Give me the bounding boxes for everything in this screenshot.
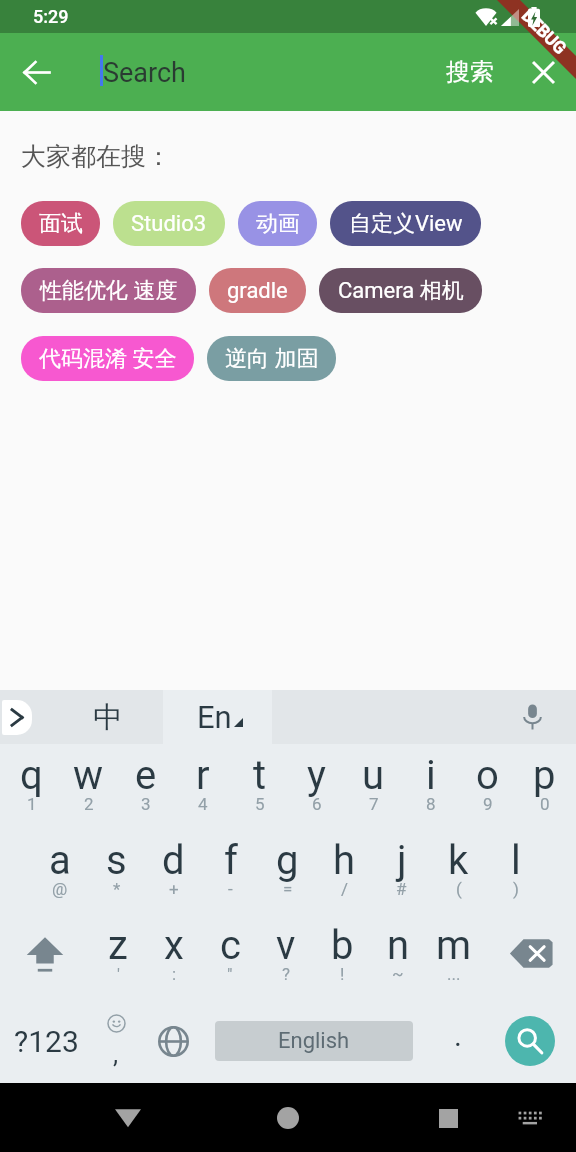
staticText: ... xyxy=(447,964,461,984)
staticText: Studio3 xyxy=(131,211,207,237)
button[interactable]: g xyxy=(259,829,316,914)
staticText: 5:29 xyxy=(33,6,69,27)
staticText: = xyxy=(283,879,293,899)
staticText: 2 xyxy=(84,794,94,814)
staticText: + xyxy=(169,879,179,899)
staticText: e xyxy=(135,752,157,799)
button[interactable]: 逆向 加固 xyxy=(207,336,336,381)
button[interactable]: Recents xyxy=(420,1090,476,1146)
button[interactable]: Camera 相机 xyxy=(319,268,482,313)
button[interactable]: o xyxy=(459,744,516,829)
staticText: 搜索 xyxy=(446,57,494,87)
button[interactable]: English xyxy=(215,1021,413,1061)
staticText: # xyxy=(396,879,407,899)
button[interactable]: Home xyxy=(260,1090,316,1146)
button[interactable]: n xyxy=(370,914,426,999)
staticText: . xyxy=(454,1018,462,1053)
staticText: 代码混淆 安全 xyxy=(39,345,177,373)
staticText: 0 xyxy=(540,794,550,814)
button[interactable]: 面试 xyxy=(21,201,100,246)
button[interactable]: x xyxy=(146,914,202,999)
staticText: 5 xyxy=(255,794,265,814)
staticText: 中 xyxy=(93,699,122,736)
button[interactable]: Hide keyboard xyxy=(506,1094,554,1142)
button[interactable]: h xyxy=(316,829,373,914)
staticText: j xyxy=(397,837,407,884)
staticText: f xyxy=(224,837,238,884)
button[interactable]: Search xyxy=(505,1016,555,1066)
staticText: ? xyxy=(282,964,291,984)
staticText: r xyxy=(196,752,210,799)
button[interactable]: ?123 xyxy=(0,999,92,1083)
button[interactable]: Backspace xyxy=(486,914,576,999)
staticText: " xyxy=(227,964,233,984)
staticText: 自定义View xyxy=(349,210,463,238)
button[interactable]: En xyxy=(163,690,272,744)
staticText: 性能优化 速度 xyxy=(40,277,178,305)
staticText: Search xyxy=(103,57,186,89)
button[interactable]: k xyxy=(430,829,487,914)
button[interactable]: f xyxy=(202,829,259,914)
button[interactable]: 代码混淆 安全 xyxy=(21,336,194,381)
button[interactable]: e xyxy=(117,744,174,829)
staticText: Camera 相机 xyxy=(338,277,464,305)
button[interactable]: gradle xyxy=(209,268,306,313)
staticText: ( xyxy=(456,879,462,899)
button[interactable]: s xyxy=(88,829,145,914)
button[interactable]: l xyxy=(487,829,544,914)
button[interactable]: a xyxy=(32,829,88,914)
staticText: 逆向 加固 xyxy=(225,345,319,373)
staticText: a xyxy=(49,837,71,884)
staticText: y xyxy=(307,752,326,799)
staticText: ?123 xyxy=(14,1024,79,1059)
button[interactable]: Close xyxy=(521,50,565,94)
staticText: - xyxy=(228,879,233,899)
button[interactable]: y xyxy=(288,744,345,829)
button[interactable]: Change language xyxy=(147,1015,199,1067)
button[interactable]: t xyxy=(231,744,288,829)
button[interactable]: 搜索 xyxy=(438,49,502,95)
button[interactable]: 性能优化 速度 xyxy=(21,268,196,313)
button[interactable]: u xyxy=(345,744,402,829)
staticText: , xyxy=(113,1039,119,1069)
staticText: 动画 xyxy=(256,210,300,238)
staticText: v xyxy=(276,922,296,969)
button[interactable]: j xyxy=(373,829,430,914)
staticText: 3 xyxy=(141,794,151,814)
staticText: m xyxy=(436,922,472,969)
button[interactable]: Back xyxy=(13,48,61,96)
staticText: ! xyxy=(340,964,345,984)
staticText: c xyxy=(220,922,241,969)
button[interactable]: Shift xyxy=(0,914,90,999)
staticText: w xyxy=(73,752,104,799)
button[interactable]: v xyxy=(258,914,314,999)
staticText: ' xyxy=(117,964,120,984)
button[interactable]: i xyxy=(402,744,459,829)
button[interactable]: 自定义View xyxy=(330,201,481,246)
staticText: 1 xyxy=(27,794,37,814)
button[interactable]: Voice input xyxy=(272,690,576,744)
button[interactable]: Expand xyxy=(2,700,32,735)
button[interactable]: r xyxy=(174,744,231,829)
staticText: l xyxy=(511,837,521,884)
button[interactable]: b xyxy=(314,914,370,999)
button[interactable]: 中 xyxy=(0,690,163,744)
button[interactable]: w xyxy=(60,744,117,829)
button[interactable]: d xyxy=(145,829,202,914)
staticText: h xyxy=(333,837,356,884)
staticText: n xyxy=(387,922,410,969)
button[interactable]: p xyxy=(516,744,573,829)
button[interactable]: c xyxy=(202,914,258,999)
button[interactable]: 动画 xyxy=(238,201,317,246)
staticText: : xyxy=(172,964,177,984)
button[interactable]: Emoji xyxy=(86,999,146,1083)
button[interactable]: z xyxy=(90,914,146,999)
staticText: g xyxy=(276,837,299,884)
button[interactable]: Back xyxy=(100,1090,156,1146)
button[interactable]: m xyxy=(426,914,482,999)
button[interactable]: . xyxy=(428,1011,488,1071)
button[interactable]: q xyxy=(3,744,60,829)
staticText: English xyxy=(278,1028,350,1054)
button[interactable]: Studio3 xyxy=(113,201,225,246)
staticText: ) xyxy=(513,879,519,899)
